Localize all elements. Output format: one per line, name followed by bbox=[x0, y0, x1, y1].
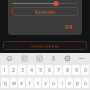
staticText: 1 bbox=[3, 67, 6, 73]
staticText: 6 bbox=[48, 67, 51, 73]
button[interactable]: Clipboard bbox=[32, 53, 46, 63]
button[interactable]: i bbox=[58, 78, 65, 88]
staticText: OK bbox=[65, 24, 73, 31]
button[interactable]: Emoji bbox=[2, 53, 17, 63]
button[interactable]: 8 bbox=[63, 65, 71, 75]
button[interactable]: Stickers bbox=[17, 53, 32, 63]
button[interactable]: 1 bbox=[1, 65, 8, 75]
button[interactable]: e bbox=[18, 78, 25, 88]
button[interactable]: 6 bbox=[45, 65, 53, 75]
staticText: 7 bbox=[57, 67, 60, 73]
staticText: SPEICHERN bbox=[31, 43, 59, 49]
staticText: 2 bbox=[12, 67, 15, 73]
button[interactable]: u bbox=[50, 78, 57, 88]
button[interactable]: 2 bbox=[9, 65, 17, 75]
button[interactable]: ü bbox=[82, 78, 89, 88]
staticText: Kalender bbox=[35, 9, 56, 15]
staticText: 9 bbox=[75, 67, 78, 73]
button[interactable]: t bbox=[34, 78, 41, 88]
button[interactable]: p bbox=[74, 78, 81, 88]
staticText: p bbox=[76, 80, 79, 86]
staticText: t bbox=[37, 80, 39, 86]
staticText: q bbox=[4, 80, 7, 86]
button[interactable]: 3 bbox=[18, 65, 26, 75]
button[interactable]: Kalender bbox=[12, 7, 78, 16]
staticText: e bbox=[20, 80, 23, 86]
button[interactable]: z bbox=[42, 78, 49, 88]
button[interactable]: w bbox=[10, 78, 17, 88]
button[interactable]: SPEICHERN bbox=[3, 41, 87, 50]
button[interactable]: More options bbox=[74, 53, 88, 63]
staticText: z bbox=[44, 80, 47, 86]
staticText: 3 bbox=[21, 67, 24, 73]
staticText: u bbox=[52, 80, 55, 86]
staticText: r bbox=[29, 80, 31, 86]
button[interactable]: r bbox=[26, 78, 33, 88]
button[interactable]: 5 bbox=[36, 65, 44, 75]
button[interactable]: Value slider bbox=[13, 0, 77, 7]
button[interactable]: 7 bbox=[54, 65, 62, 75]
button[interactable]: 4 bbox=[27, 65, 35, 75]
staticText: w bbox=[12, 80, 16, 86]
button[interactable]: 9 bbox=[72, 65, 80, 75]
button[interactable]: q bbox=[1, 78, 9, 88]
button[interactable]: o bbox=[66, 78, 73, 88]
button[interactable]: OK bbox=[60, 23, 78, 32]
staticText: ü bbox=[84, 80, 87, 86]
staticText: 0 bbox=[84, 67, 87, 73]
button[interactable]: 0 bbox=[81, 65, 89, 75]
staticText: 4 bbox=[30, 67, 33, 73]
staticText: 5 bbox=[39, 67, 42, 73]
button[interactable]: Settings bbox=[60, 53, 74, 63]
button[interactable]: Voice input bbox=[46, 53, 60, 63]
staticText: o bbox=[68, 80, 71, 86]
staticText: i bbox=[61, 80, 63, 86]
staticText: 8 bbox=[66, 67, 69, 73]
